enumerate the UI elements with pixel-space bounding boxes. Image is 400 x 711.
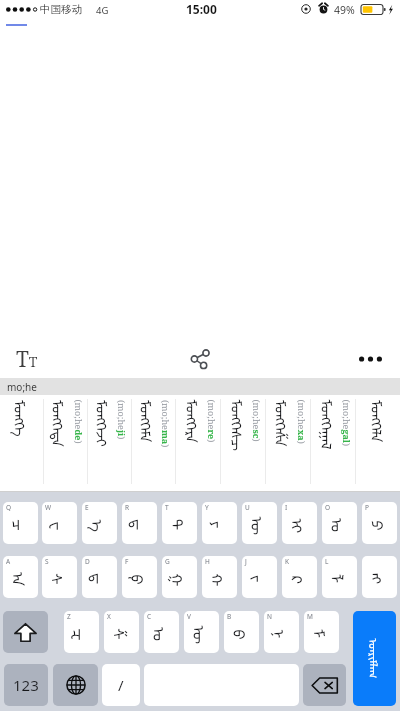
button[interactable]: ᠮᠣᠩᠬᠡᠰᠴ <box>221 395 265 492</box>
button[interactable]: X <box>104 611 139 653</box>
staticText: ᠯ <box>327 574 353 584</box>
button[interactable]: Q <box>3 502 38 544</box>
button[interactable]: ᠮᠣᠩᠬᠡᠯᠡ <box>356 395 400 492</box>
button[interactable]: F <box>122 556 157 598</box>
staticText: ᠩ <box>367 573 393 585</box>
staticText: ᠪ <box>228 629 254 640</box>
button[interactable]: J <box>242 556 277 598</box>
staticText: L <box>325 557 329 566</box>
button[interactable]: Text size <box>10 341 44 378</box>
button[interactable]: U <box>242 502 277 544</box>
staticText: ᠰ <box>47 573 73 585</box>
button[interactable]: ᠮᠣᠩᠬᠡᠳᠡ <box>44 395 87 492</box>
button[interactable]: 123 <box>4 664 48 706</box>
button[interactable]: L <box>322 556 357 598</box>
staticText: E <box>85 503 89 512</box>
staticText: 4G <box>96 4 109 17</box>
staticText: D <box>85 557 90 566</box>
button[interactable]: K <box>282 556 317 598</box>
staticText: / <box>118 675 124 695</box>
staticText: ᠮᠣᠩᠬᠡᠯᠡ <box>366 400 391 443</box>
staticText: (mo;hema) <box>160 400 172 448</box>
staticText: N <box>267 612 272 621</box>
staticText: ᠲ <box>167 519 193 531</box>
staticText: ᠮᠣᠩᠬᠡᠳᠡ <box>47 400 72 447</box>
button[interactable]: / <box>102 664 140 706</box>
staticText: ᠳ <box>127 519 153 531</box>
staticText: ᠳ <box>87 573 113 585</box>
button[interactable]: C <box>144 611 179 653</box>
staticText: Q <box>6 503 12 512</box>
button[interactable]: P <box>362 502 397 544</box>
staticText: 49% <box>334 3 355 17</box>
button[interactable]: ᠮᠣᠩᠬᠡᠱᠠ <box>266 395 310 492</box>
staticText: F <box>125 557 129 566</box>
staticText: ᠫ <box>366 520 392 531</box>
staticText: I <box>285 503 288 512</box>
button[interactable]: G <box>162 556 197 598</box>
staticText: ᠮᠣᠩᠬᠡᠮᠠ <box>135 400 160 443</box>
button[interactable]: B <box>224 611 259 653</box>
staticText: ᠬ <box>206 573 232 586</box>
staticText: P <box>365 503 369 512</box>
staticText: (mo;here) <box>205 399 217 442</box>
button[interactable]: H <box>202 556 237 598</box>
staticText: ᠥ <box>188 625 214 644</box>
staticText: (mo;heji) <box>116 400 128 440</box>
staticText: ᠶ <box>207 521 233 529</box>
staticText: ᠮᠣᠩᠬᠡᠰᠴ <box>225 399 250 451</box>
staticText: ᠮᠣᠩᠬᠡᠭᠠᠯ <box>315 399 340 449</box>
staticText: TT <box>16 345 38 374</box>
button[interactable]: Share <box>184 343 216 375</box>
button[interactable]: T <box>162 502 197 544</box>
button[interactable]: Switch language <box>53 664 98 706</box>
staticText: ᠱ <box>109 628 135 640</box>
staticText: Z <box>67 612 71 621</box>
button[interactable]: I <box>282 502 317 544</box>
staticText: ᠨ <box>269 629 295 639</box>
staticText: ᠥ <box>246 516 272 535</box>
staticText: 123 <box>13 675 39 695</box>
button[interactable]: O <box>322 502 357 544</box>
staticText: ᠮᠣᠩᠬᠡᠵᠢ <box>91 400 116 447</box>
button[interactable]: N <box>264 611 299 653</box>
staticText: Y <box>205 503 209 512</box>
button[interactable]: S <box>42 556 77 598</box>
button[interactable]: Enter <box>353 611 396 706</box>
button[interactable]: M <box>304 611 339 653</box>
staticText: R <box>125 503 130 512</box>
staticText: K <box>285 557 290 566</box>
button[interactable]: ᠮᠣᠩᠬᠡᠭᠠᠯ <box>311 395 355 492</box>
button[interactable]: A <box>3 556 38 598</box>
staticText: A <box>6 557 11 566</box>
button[interactable]: ᠮᠣᠩᠬᠡᠮᠠ <box>132 395 175 492</box>
button[interactable]: E <box>82 502 117 544</box>
staticText: ᠮᠣᠩᠬᠡᠷᠡ <box>180 399 205 443</box>
staticText: S <box>45 557 49 566</box>
staticText: ᠣ <box>327 518 353 532</box>
button[interactable]: R <box>122 502 157 544</box>
button[interactable]: ᠮᠣᠩᠬᠡᠷᠡ <box>176 395 220 492</box>
button[interactable]: Z <box>64 611 99 653</box>
staticText: 15:00 <box>186 1 217 17</box>
staticText: T <box>165 503 169 512</box>
button[interactable]: Backspace <box>303 664 346 706</box>
staticText: V <box>187 612 191 621</box>
button[interactable]: Y <box>202 502 237 544</box>
staticText: ᠢ <box>286 518 312 533</box>
staticText: ᠮᠣᠩᠬᠡᠱᠠ <box>270 400 295 447</box>
button[interactable]: ᠩ <box>362 556 397 598</box>
button[interactable]: Shift <box>3 611 48 653</box>
button[interactable]: D <box>82 556 117 598</box>
button[interactable]: V <box>184 611 219 653</box>
button[interactable]: More options <box>353 350 388 368</box>
button[interactable]: ᠮᠣᠩᠬᠡᠵᠢ <box>88 395 131 492</box>
button[interactable]: ᠮᠣᠩᠬᠡ <box>0 395 43 492</box>
staticText: B <box>227 612 232 621</box>
staticText: ᠴ <box>8 519 34 531</box>
staticText: ᠵ <box>247 575 273 583</box>
button[interactable]: W <box>42 502 77 544</box>
staticText: ᠭ <box>166 573 192 586</box>
staticText: ᠮᠣᠩᠬᠡ <box>9 400 34 437</box>
